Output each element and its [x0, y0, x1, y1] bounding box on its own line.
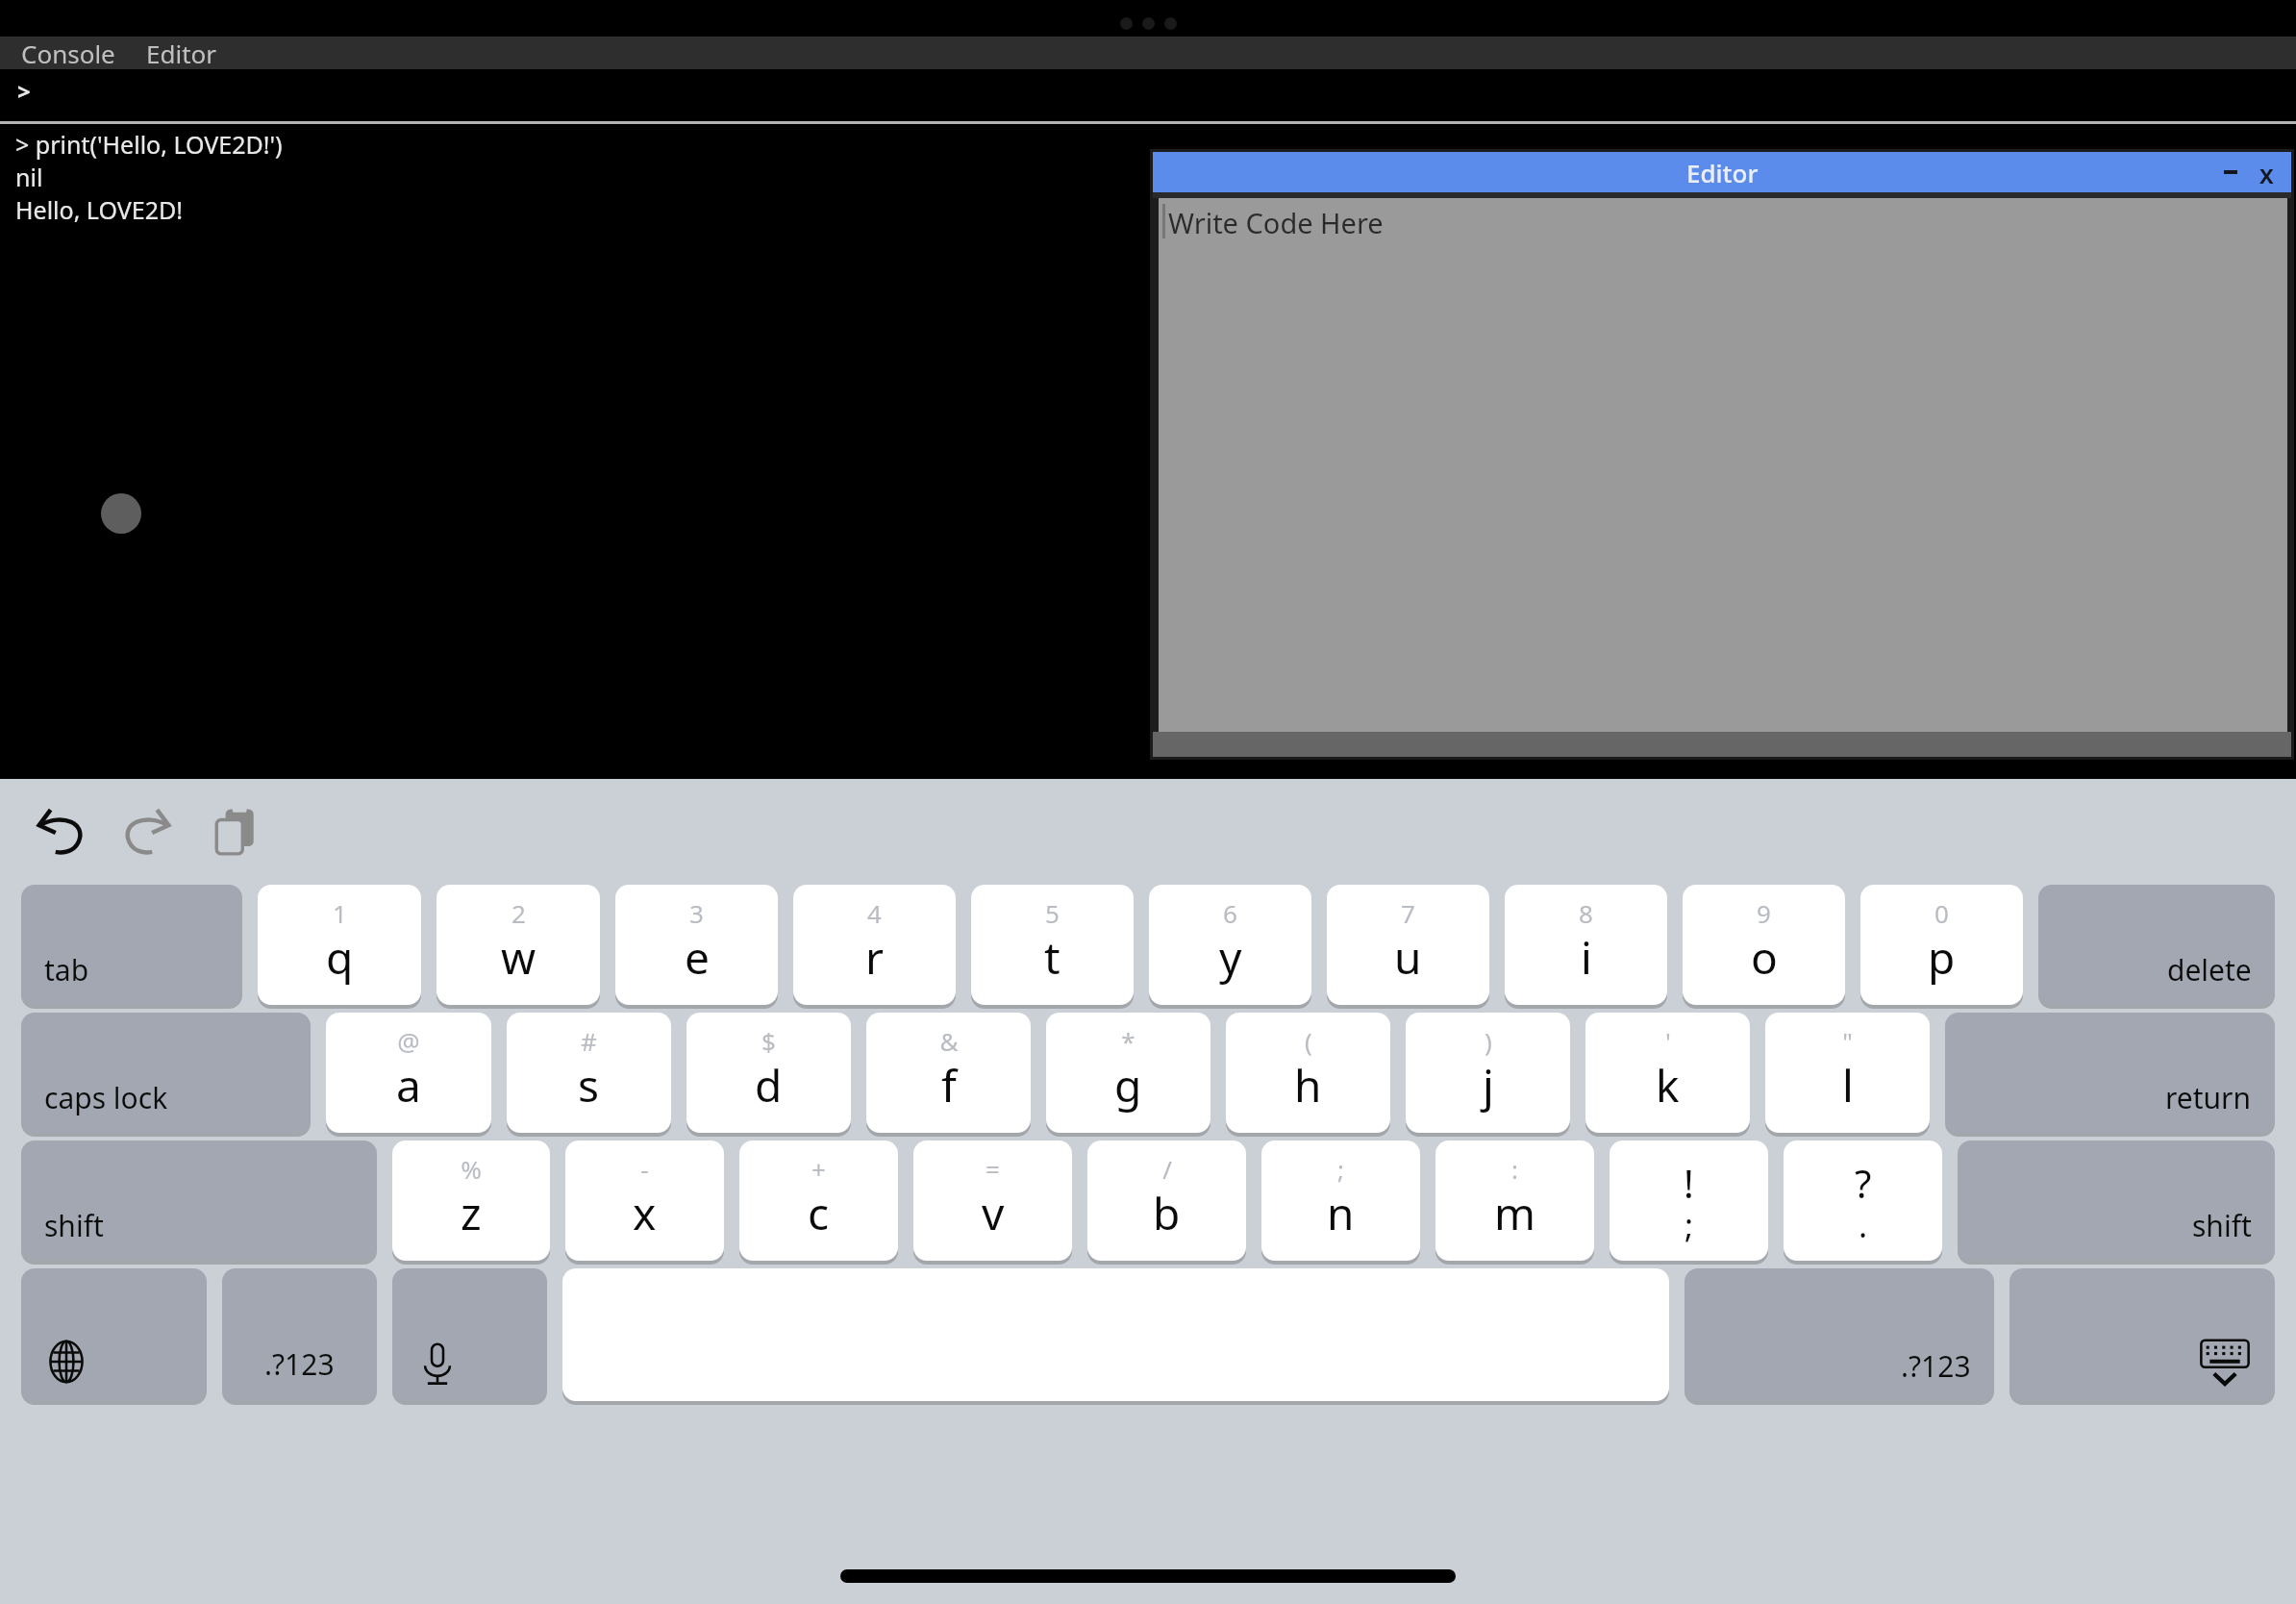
button[interactable]: & [866, 1013, 1031, 1133]
button[interactable]: Editor [146, 37, 217, 69]
staticText: k [1656, 1055, 1680, 1115]
button[interactable]: delete [2038, 885, 2275, 1005]
button[interactable]: Hide keyboard [2009, 1268, 2275, 1401]
button[interactable]: 1 [258, 885, 421, 1005]
staticText: 1 [333, 896, 347, 930]
button[interactable]: .?123 [222, 1268, 377, 1401]
button[interactable]: caps lock [21, 1013, 311, 1133]
staticText: s [578, 1055, 600, 1115]
staticText: ! [1684, 1157, 1694, 1209]
button[interactable]: 5 [971, 885, 1134, 1005]
button[interactable]: - [565, 1140, 724, 1261]
staticText: caps lock [44, 1078, 168, 1117]
staticText: - [640, 1152, 649, 1186]
staticText: ; [1337, 1152, 1344, 1186]
button[interactable]: Minimize [2220, 162, 2241, 183]
button[interactable]: tab [21, 885, 242, 1005]
staticText: ( [1305, 1024, 1312, 1058]
staticText: t [1044, 927, 1061, 988]
button[interactable]: + [739, 1140, 898, 1261]
button[interactable]: Paste [202, 798, 269, 865]
staticText: : [1511, 1152, 1518, 1186]
staticText: u [1394, 927, 1422, 988]
button[interactable]: * [1046, 1013, 1210, 1133]
button[interactable]: ) [1406, 1013, 1570, 1133]
button[interactable]: 8 [1505, 885, 1667, 1005]
button[interactable]: 0 [1860, 885, 2023, 1005]
button[interactable]: ? [1784, 1140, 1942, 1261]
staticText: @ [397, 1024, 420, 1058]
staticText: ) [1485, 1024, 1492, 1058]
button[interactable]: shift [1958, 1140, 2275, 1261]
staticText: > [17, 75, 31, 107]
button[interactable] [562, 1268, 1669, 1401]
staticText: shift [44, 1206, 104, 1245]
staticText: X [2259, 161, 2274, 184]
button[interactable]: @ [326, 1013, 491, 1133]
staticText: 0 [1934, 896, 1949, 930]
staticText: % [461, 1152, 482, 1186]
button[interactable]: Write Code Here [1159, 198, 2287, 732]
staticText: i [1581, 927, 1592, 988]
staticText: .?123 [1901, 1346, 1971, 1386]
button[interactable]: = [913, 1140, 1072, 1261]
button[interactable]: " [1765, 1013, 1930, 1133]
staticText: Write Code Here [1168, 204, 1384, 241]
staticText: Editor [1686, 156, 1759, 189]
staticText: 4 [867, 896, 882, 930]
staticText: = [986, 1152, 1000, 1186]
staticText: * [1121, 1024, 1136, 1058]
staticText: > print('Hello, LOVE2D!') [15, 128, 283, 161]
staticText: .?123 [264, 1344, 335, 1384]
button[interactable]: ' [1585, 1013, 1750, 1133]
button[interactable]: .?123 [1685, 1268, 1994, 1401]
staticText: . [1859, 1203, 1868, 1247]
button[interactable]: ! [1610, 1140, 1768, 1261]
staticText: m [1494, 1183, 1536, 1243]
staticText: shift [2192, 1206, 2252, 1245]
staticText: l [1842, 1055, 1854, 1115]
button[interactable]: 7 [1327, 885, 1489, 1005]
staticText: ? [1855, 1157, 1872, 1209]
button[interactable]: Switch keyboard language [21, 1268, 207, 1401]
staticText: " [1842, 1024, 1853, 1058]
staticText: f [941, 1055, 957, 1115]
staticText: # [581, 1024, 597, 1058]
button[interactable]: $ [686, 1013, 851, 1133]
staticText: 2 [512, 896, 526, 930]
button[interactable]: ; [1261, 1140, 1420, 1261]
button[interactable]: Console [21, 37, 115, 69]
button[interactable]: 6 [1149, 885, 1311, 1005]
button[interactable]: 4 [793, 885, 956, 1005]
staticText: nil [15, 161, 43, 193]
button[interactable]: : [1435, 1140, 1594, 1261]
button[interactable]: 3 [615, 885, 778, 1005]
staticText: e [685, 927, 710, 988]
staticText: q [326, 927, 354, 988]
button[interactable]: / [1087, 1140, 1246, 1261]
staticText: d [755, 1055, 783, 1115]
button[interactable]: # [507, 1013, 671, 1133]
button[interactable]: Close [2255, 161, 2278, 184]
button[interactable]: 9 [1683, 885, 1845, 1005]
button[interactable]: shift [21, 1140, 377, 1261]
staticText: Editor [146, 37, 217, 69]
button[interactable]: ( [1226, 1013, 1390, 1133]
staticText: h [1294, 1055, 1322, 1115]
staticText: 6 [1223, 896, 1237, 930]
staticText: r [865, 927, 884, 988]
button[interactable]: return [1945, 1013, 2275, 1133]
staticText: c [808, 1183, 830, 1243]
staticText: b [1153, 1183, 1181, 1243]
staticText: n [1327, 1183, 1355, 1243]
button[interactable]: Dictation [392, 1268, 547, 1401]
staticText: 9 [1757, 896, 1771, 930]
button[interactable]: 2 [437, 885, 600, 1005]
button[interactable]: % [392, 1140, 550, 1261]
staticText: p [1928, 927, 1956, 988]
staticText: & [939, 1024, 959, 1058]
button[interactable]: Redo [113, 798, 181, 865]
button[interactable]: Undo [27, 798, 94, 865]
staticText: y [1219, 927, 1242, 988]
staticText: 5 [1045, 896, 1060, 930]
